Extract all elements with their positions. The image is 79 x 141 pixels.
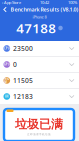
staticText: CPU <box>4 47 10 50</box>
button[interactable]: Back <box>0 5 10 14</box>
staticText: Benchmark Results (V8.1.0) <box>10 6 78 13</box>
staticText: 11505 <box>13 76 33 85</box>
staticText: 0 <box>13 60 17 69</box>
staticText: 10:42 <box>40 0 49 5</box>
staticText: iPhone 8 <box>32 14 46 20</box>
button[interactable]: CPU <box>0 41 79 56</box>
staticText: GPU <box>4 63 10 66</box>
button[interactable]: 垃圾已满 <box>0 109 79 141</box>
staticText: MEM <box>4 77 9 84</box>
button[interactable]: MEM <box>0 73 79 88</box>
staticText: 47188 <box>16 19 56 37</box>
staticText: 垃圾已满 <box>15 117 63 132</box>
staticText: 23500 <box>13 44 33 53</box>
staticText: 立即清理手机垃圾 <box>27 133 51 136</box>
staticText: ‹ App Store <box>2 0 21 5</box>
button[interactable]: Ranking <box>58 26 63 30</box>
staticText: UX <box>5 95 9 98</box>
staticText: 100% <box>68 0 77 5</box>
button[interactable]: GPU <box>0 57 79 72</box>
button[interactable]: UX <box>0 89 79 104</box>
staticText: 12183 <box>13 92 33 101</box>
